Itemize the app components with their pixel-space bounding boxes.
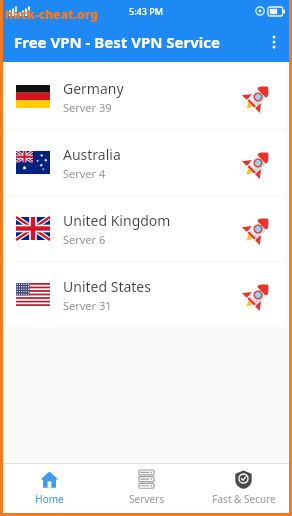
- other: Connect: [240, 145, 276, 181]
- button[interactable]: Fast & Secure: [195, 464, 292, 516]
- button[interactable]: Servers: [98, 464, 195, 516]
- staticText: Home: [35, 492, 64, 506]
- other: Connect: [240, 211, 276, 247]
- other: Connect: [240, 79, 276, 115]
- staticText: Server 31: [63, 298, 112, 313]
- staticText: Australia: [63, 145, 121, 164]
- button[interactable]: Germany: [6, 65, 286, 128]
- other: Connect: [240, 277, 276, 313]
- staticText: 5:43 PM: [129, 5, 163, 17]
- staticText: United Kingdom: [63, 211, 171, 230]
- button[interactable]: United States: [6, 263, 286, 326]
- staticText: Fast & Secure: [212, 492, 276, 506]
- staticText: Server 6: [63, 232, 106, 247]
- staticText: Germany: [63, 79, 124, 98]
- staticText: Server 4: [63, 166, 106, 181]
- button[interactable]: Australia: [6, 131, 286, 194]
- button[interactable]: More options: [256, 22, 292, 62]
- staticText: hack-cheat.org: [5, 6, 98, 22]
- staticText: Server 39: [63, 100, 112, 115]
- staticText: United States: [63, 277, 151, 296]
- button[interactable]: United Kingdom: [6, 197, 286, 260]
- staticText: Free VPN - Best VPN Service: [14, 32, 221, 52]
- button[interactable]: Home: [0, 464, 98, 516]
- staticText: Servers: [129, 492, 164, 506]
